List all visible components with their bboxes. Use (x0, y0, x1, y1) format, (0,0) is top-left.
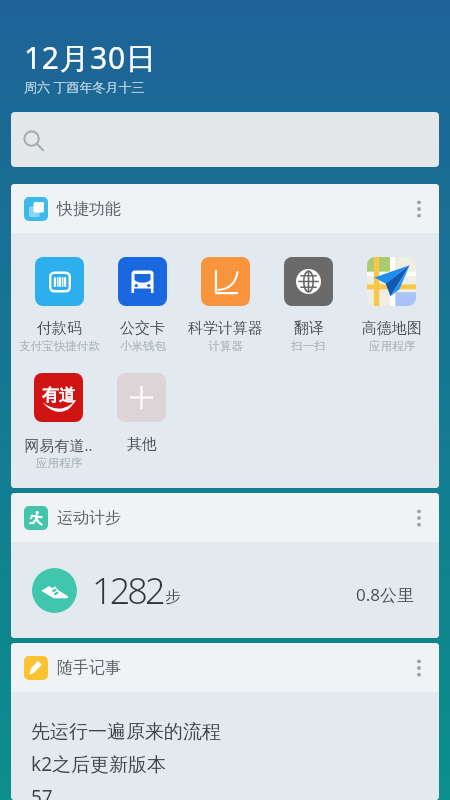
staticText: 付款码 (37, 319, 82, 338)
button[interactable]: 随手记事 (11, 643, 439, 692)
button[interactable]: 其他 (100, 373, 183, 471)
staticText: 0.8公里 (356, 583, 415, 606)
staticText: 翻译 (294, 319, 324, 338)
button[interactable]: 有道 (17, 373, 100, 470)
staticText: 应用程序 (36, 456, 82, 470)
button[interactable]: 先运行一遍原来的流程 (11, 692, 439, 800)
staticText: 运动计步 (57, 508, 121, 528)
button[interactable]: More options (404, 194, 434, 224)
staticText: 公交卡 (120, 319, 165, 338)
staticText: 扫一扫 (291, 339, 326, 353)
staticText: 1282 (92, 566, 163, 615)
button[interactable]: 付款码 (17, 257, 101, 353)
staticText: 有道 (42, 385, 76, 406)
staticText: 科学计算器 (188, 319, 263, 338)
button[interactable]: Search (11, 112, 439, 167)
button[interactable]: 科学计算器 (184, 257, 267, 353)
staticText: 12月30日 (24, 37, 157, 78)
button[interactable]: More options (404, 503, 434, 533)
button[interactable]: 快捷功能 (11, 184, 439, 233)
staticText: 先运行一遍原来的流程 (31, 720, 221, 744)
staticText: 小米钱包 (120, 339, 166, 353)
button[interactable]: 高德地图 (350, 257, 433, 353)
staticText: 快捷功能 (57, 199, 121, 219)
button[interactable]: More options (404, 653, 434, 683)
button[interactable]: 翻译 (267, 257, 350, 353)
staticText: 支付宝快捷付款 (19, 339, 100, 353)
staticText: 其他 (127, 435, 157, 454)
button[interactable]: 运动计步 (11, 493, 439, 542)
staticText: 57 (31, 784, 53, 800)
staticText: 网易有道.. (24, 435, 93, 455)
button[interactable]: 公交卡 (101, 257, 184, 353)
staticText: 步 (165, 587, 181, 607)
staticText: 随手记事 (57, 658, 121, 678)
staticText: 高德地图 (362, 319, 422, 338)
button[interactable]: 1282 (11, 542, 439, 638)
staticText: 应用程序 (369, 339, 415, 353)
staticText: k2之后更新版本 (31, 751, 167, 777)
staticText: 计算器 (208, 339, 243, 353)
staticText: 周六 丁酉年冬月十三 (24, 78, 145, 96)
